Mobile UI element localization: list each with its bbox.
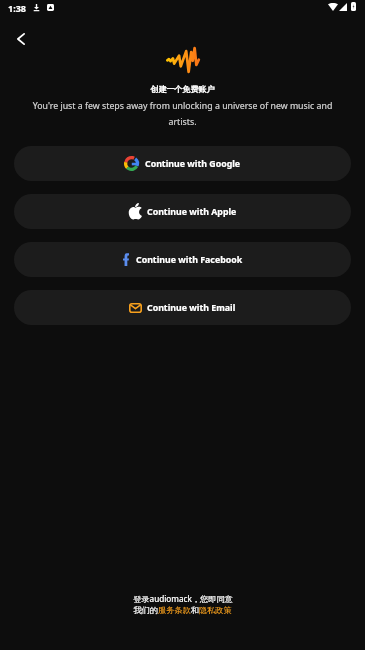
staticText: Continue with Email [147, 302, 236, 314]
button[interactable]: Continue with Apple [14, 194, 351, 229]
staticText: You're just a few steps away from unlock… [24, 100, 341, 127]
button[interactable]: Continue with Email [14, 290, 351, 325]
staticText: Continue with Google [145, 158, 241, 170]
staticText: 登录audiomack，您即同意 [133, 593, 233, 604]
staticText: 1:38 [8, 2, 26, 14]
button[interactable]: Back [5, 23, 37, 55]
staticText: Continue with Facebook [136, 254, 243, 266]
button[interactable]: Continue with Facebook [14, 242, 351, 277]
button[interactable]: 登录audiomack，您即同意 [0, 593, 365, 615]
staticText: Continue with Apple [147, 206, 237, 218]
staticText: 创建一个免费账户 [0, 84, 365, 94]
button[interactable]: Continue with Google [14, 146, 351, 181]
staticText: 我们的服务条款和隐私政策 [133, 605, 232, 615]
